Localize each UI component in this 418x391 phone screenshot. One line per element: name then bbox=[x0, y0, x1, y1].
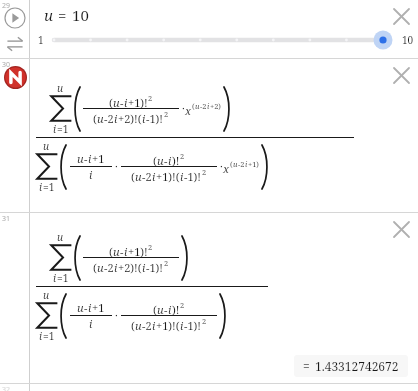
staticText: ( bbox=[153, 153, 157, 168]
staticText: u bbox=[43, 139, 50, 153]
staticText: ( bbox=[153, 302, 157, 317]
staticText: = bbox=[58, 5, 67, 25]
staticText: - bbox=[164, 302, 168, 317]
staticText: -1)! bbox=[146, 260, 164, 275]
staticText: - bbox=[84, 151, 88, 166]
staticText: i bbox=[39, 329, 43, 343]
staticText: u bbox=[113, 95, 120, 110]
staticText: · bbox=[220, 159, 223, 174]
staticText: )! bbox=[172, 153, 180, 168]
staticText: u bbox=[97, 260, 104, 275]
staticText: i bbox=[180, 318, 184, 333]
staticText: - bbox=[120, 244, 124, 259]
staticText: ( bbox=[109, 244, 113, 259]
button[interactable]: = bbox=[294, 355, 408, 377]
staticText: 10 bbox=[402, 33, 414, 47]
staticText: -2 bbox=[104, 260, 114, 275]
button[interactable]: Swap bbox=[2, 31, 28, 57]
staticText: ( bbox=[109, 95, 113, 110]
staticText: +2)!( bbox=[118, 260, 142, 275]
staticText: i bbox=[88, 151, 92, 166]
staticText: ( bbox=[192, 101, 195, 111]
staticText: u bbox=[43, 288, 50, 302]
staticText: 2 bbox=[164, 109, 169, 119]
staticText: ( bbox=[93, 260, 97, 275]
button[interactable]: Play bbox=[2, 5, 28, 31]
staticText: i bbox=[88, 300, 92, 315]
staticText: -2 bbox=[142, 318, 152, 333]
staticText: i bbox=[245, 159, 248, 169]
button[interactable]: Delete expression bbox=[388, 216, 414, 242]
staticText: u bbox=[77, 151, 84, 166]
staticText: -2 bbox=[200, 101, 207, 111]
staticText: u bbox=[135, 318, 142, 333]
staticText: u bbox=[44, 5, 53, 25]
staticText: -2 bbox=[104, 111, 114, 126]
staticText: ( bbox=[131, 318, 135, 333]
staticText: i bbox=[142, 260, 146, 275]
staticText: ( bbox=[93, 111, 97, 126]
staticText: +1)!( bbox=[156, 318, 180, 333]
staticText: i bbox=[168, 302, 172, 317]
staticText: +2) bbox=[210, 101, 221, 111]
staticText: i bbox=[152, 318, 156, 333]
staticText: u bbox=[195, 101, 200, 111]
button[interactable]: Slider u bbox=[52, 29, 397, 51]
staticText: 2 bbox=[202, 167, 207, 177]
staticText: +2)!( bbox=[118, 111, 142, 126]
staticText: =1 bbox=[43, 329, 55, 343]
staticText: i bbox=[89, 316, 93, 331]
staticText: 1.43312742672 bbox=[315, 358, 399, 374]
staticText: 2 bbox=[180, 151, 185, 161]
staticText: - bbox=[84, 300, 88, 315]
staticText: 30 bbox=[2, 60, 11, 70]
staticText: i bbox=[207, 101, 210, 111]
staticText: x bbox=[185, 103, 192, 118]
button[interactable]: Sum bbox=[2, 64, 28, 90]
staticText: u bbox=[157, 153, 164, 168]
staticText: 2 bbox=[164, 258, 169, 268]
staticText: +1) bbox=[248, 159, 259, 169]
staticText: 2 bbox=[148, 242, 153, 252]
staticText: -1)! bbox=[146, 111, 164, 126]
staticText: i bbox=[124, 244, 128, 259]
staticText: i bbox=[53, 122, 57, 136]
staticText: = bbox=[303, 358, 310, 374]
staticText: · bbox=[182, 101, 185, 116]
button[interactable]: Delete expression bbox=[388, 62, 414, 88]
staticText: i bbox=[152, 169, 156, 184]
staticText: u bbox=[57, 230, 64, 244]
staticText: - bbox=[164, 153, 168, 168]
staticText: +1 bbox=[92, 300, 105, 315]
staticText: · bbox=[115, 159, 118, 174]
staticText: u bbox=[135, 169, 142, 184]
staticText: · bbox=[115, 308, 118, 323]
staticText: 32 bbox=[2, 385, 11, 391]
staticText: +1)!( bbox=[156, 169, 180, 184]
staticText: =1 bbox=[57, 122, 69, 136]
staticText: - bbox=[120, 95, 124, 110]
staticText: 2 bbox=[180, 300, 185, 310]
staticText: i bbox=[168, 153, 172, 168]
staticText: i bbox=[53, 271, 57, 285]
staticText: )! bbox=[172, 302, 180, 317]
staticText: i bbox=[114, 260, 118, 275]
button[interactable]: Delete expression bbox=[388, 3, 414, 29]
staticText: ( bbox=[131, 169, 135, 184]
staticText: u bbox=[113, 244, 120, 259]
staticText: 1 bbox=[38, 33, 44, 47]
staticText: i bbox=[142, 111, 146, 126]
staticText: i bbox=[114, 111, 118, 126]
staticText: x bbox=[223, 161, 230, 176]
staticText: 10 bbox=[72, 5, 89, 25]
staticText: +1)! bbox=[128, 244, 148, 259]
staticText: 2 bbox=[148, 93, 153, 103]
staticText: -1)! bbox=[184, 318, 202, 333]
staticText: u bbox=[157, 302, 164, 317]
staticText: -2 bbox=[142, 169, 152, 184]
staticText: +1 bbox=[92, 151, 105, 166]
staticText: =1 bbox=[43, 180, 55, 194]
staticText: u bbox=[57, 81, 64, 95]
staticText: u bbox=[233, 159, 238, 169]
staticText: +1)! bbox=[128, 95, 148, 110]
